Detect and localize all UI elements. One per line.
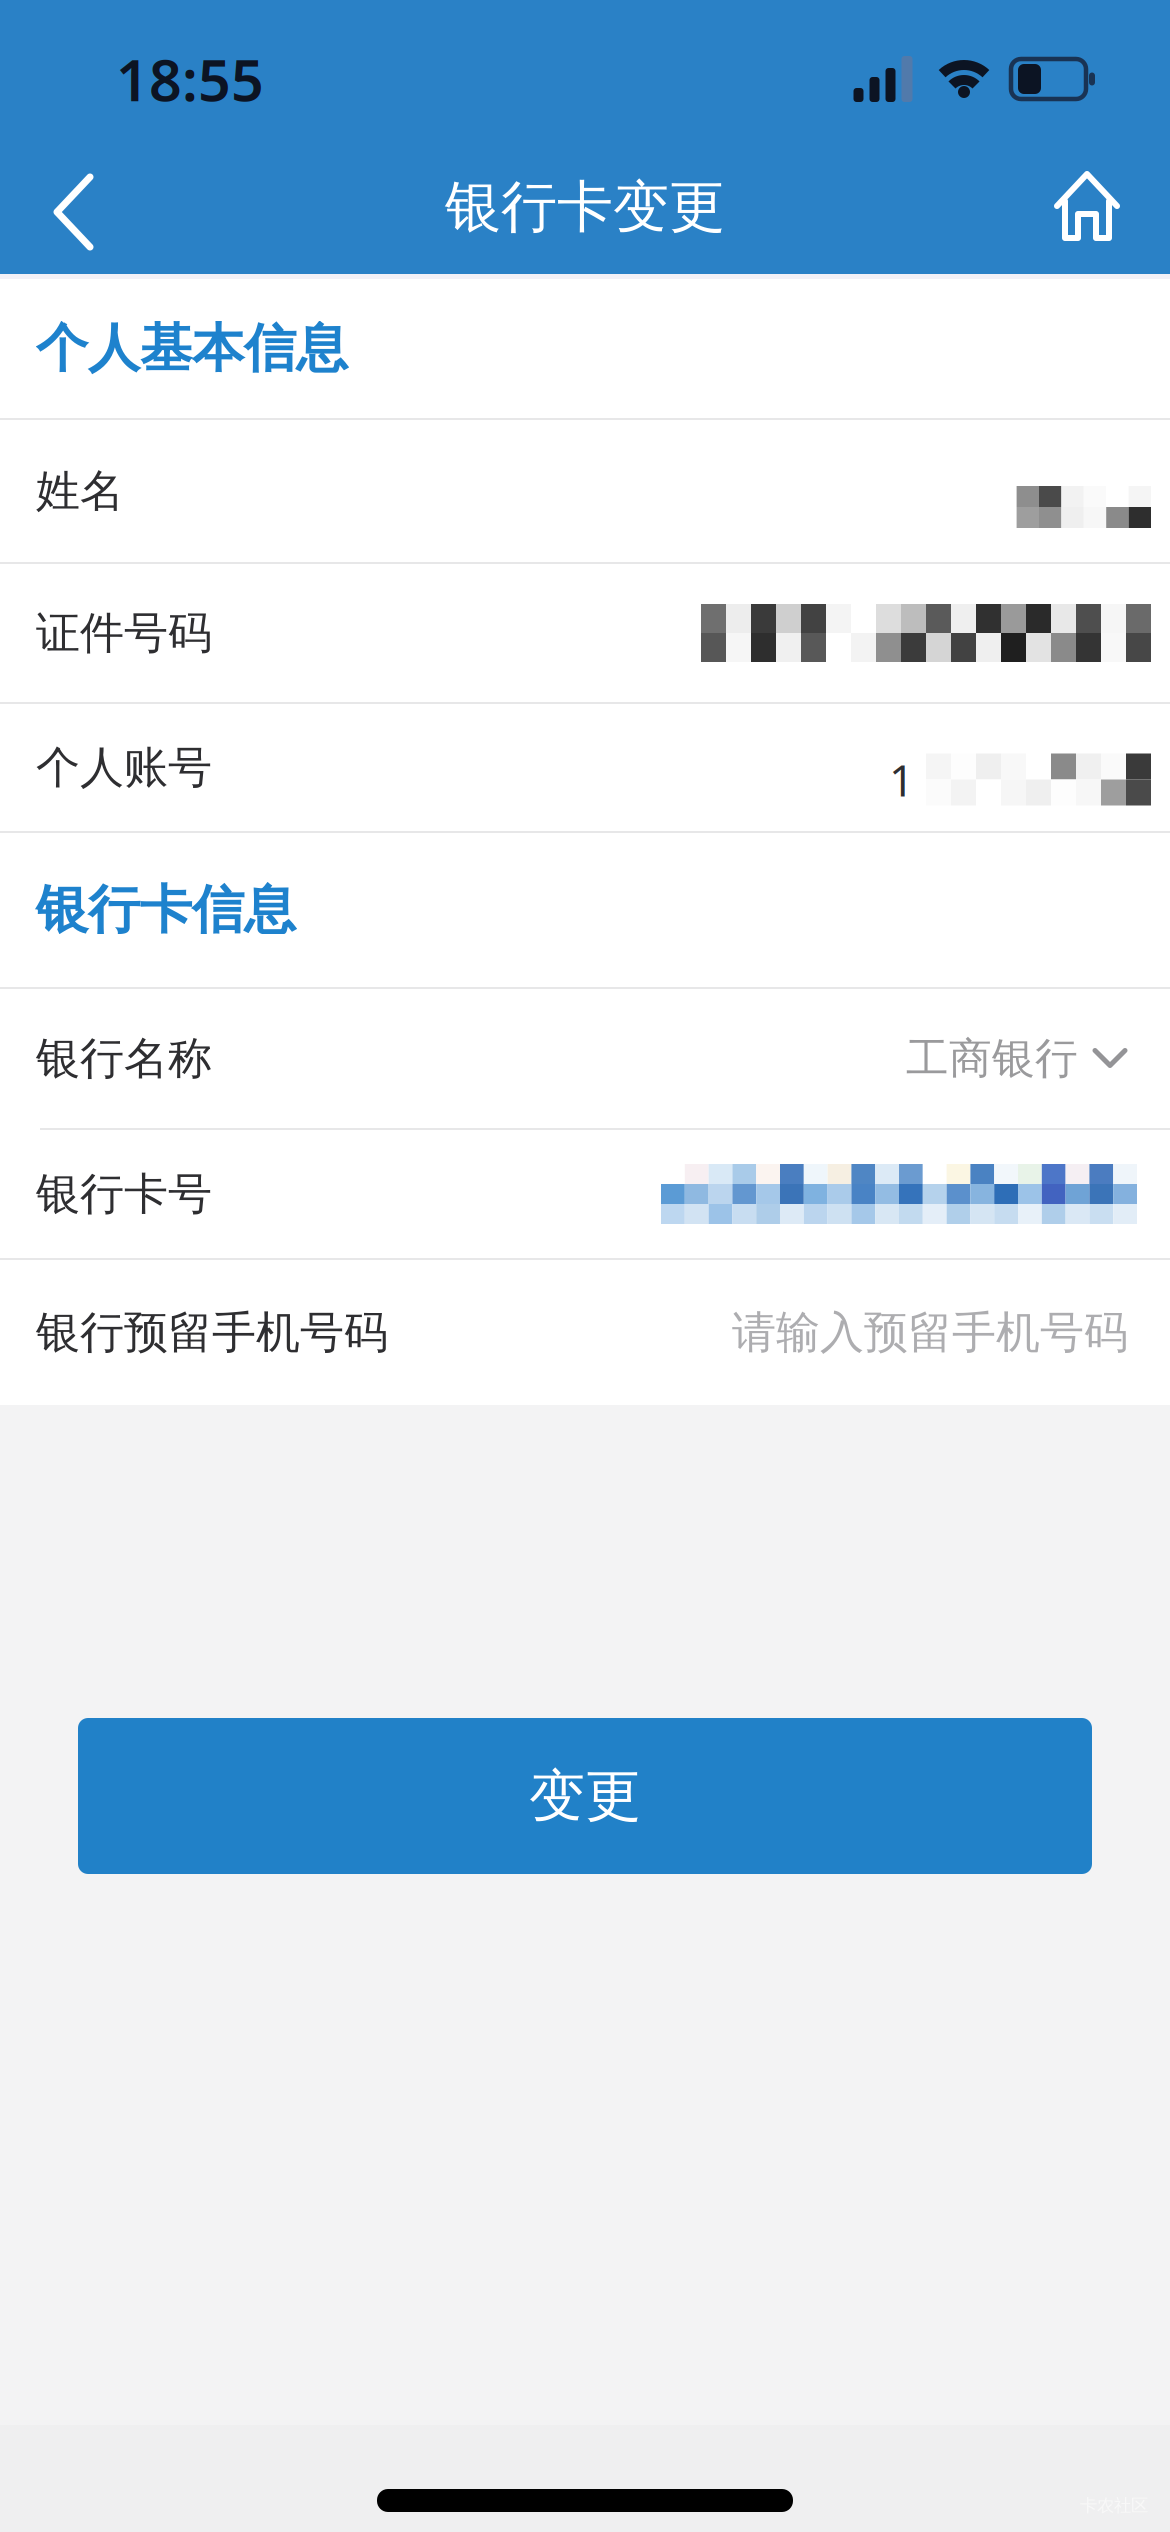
staticText: 银行卡变更: [445, 173, 725, 241]
button[interactable]: 首页: [1021, 166, 1170, 238]
staticText: 银行名称: [36, 1031, 212, 1085]
button[interactable]: 银行预留手机号码: [0, 1260, 1170, 1405]
staticText: 1: [889, 750, 914, 809]
staticText: 银行卡号: [36, 1167, 212, 1221]
staticText: 个人账号: [36, 740, 212, 794]
staticText: 证件号码: [36, 606, 212, 660]
staticText: 银行卡信息: [36, 878, 296, 942]
staticText: 个人基本信息: [36, 317, 348, 380]
button[interactable]: 变更: [78, 1718, 1092, 1874]
staticText: 工商银行: [906, 1032, 1078, 1085]
staticText: 银行预留手机号码: [36, 1305, 388, 1359]
button[interactable]: 银行名称: [0, 989, 1170, 1128]
staticText: 请输入预留手机号码: [732, 1305, 1128, 1359]
button[interactable]: 返回: [0, 163, 126, 241]
staticText: 变更: [529, 1762, 641, 1830]
staticText: 姓名: [36, 464, 124, 518]
staticText: 18:55: [116, 41, 264, 117]
